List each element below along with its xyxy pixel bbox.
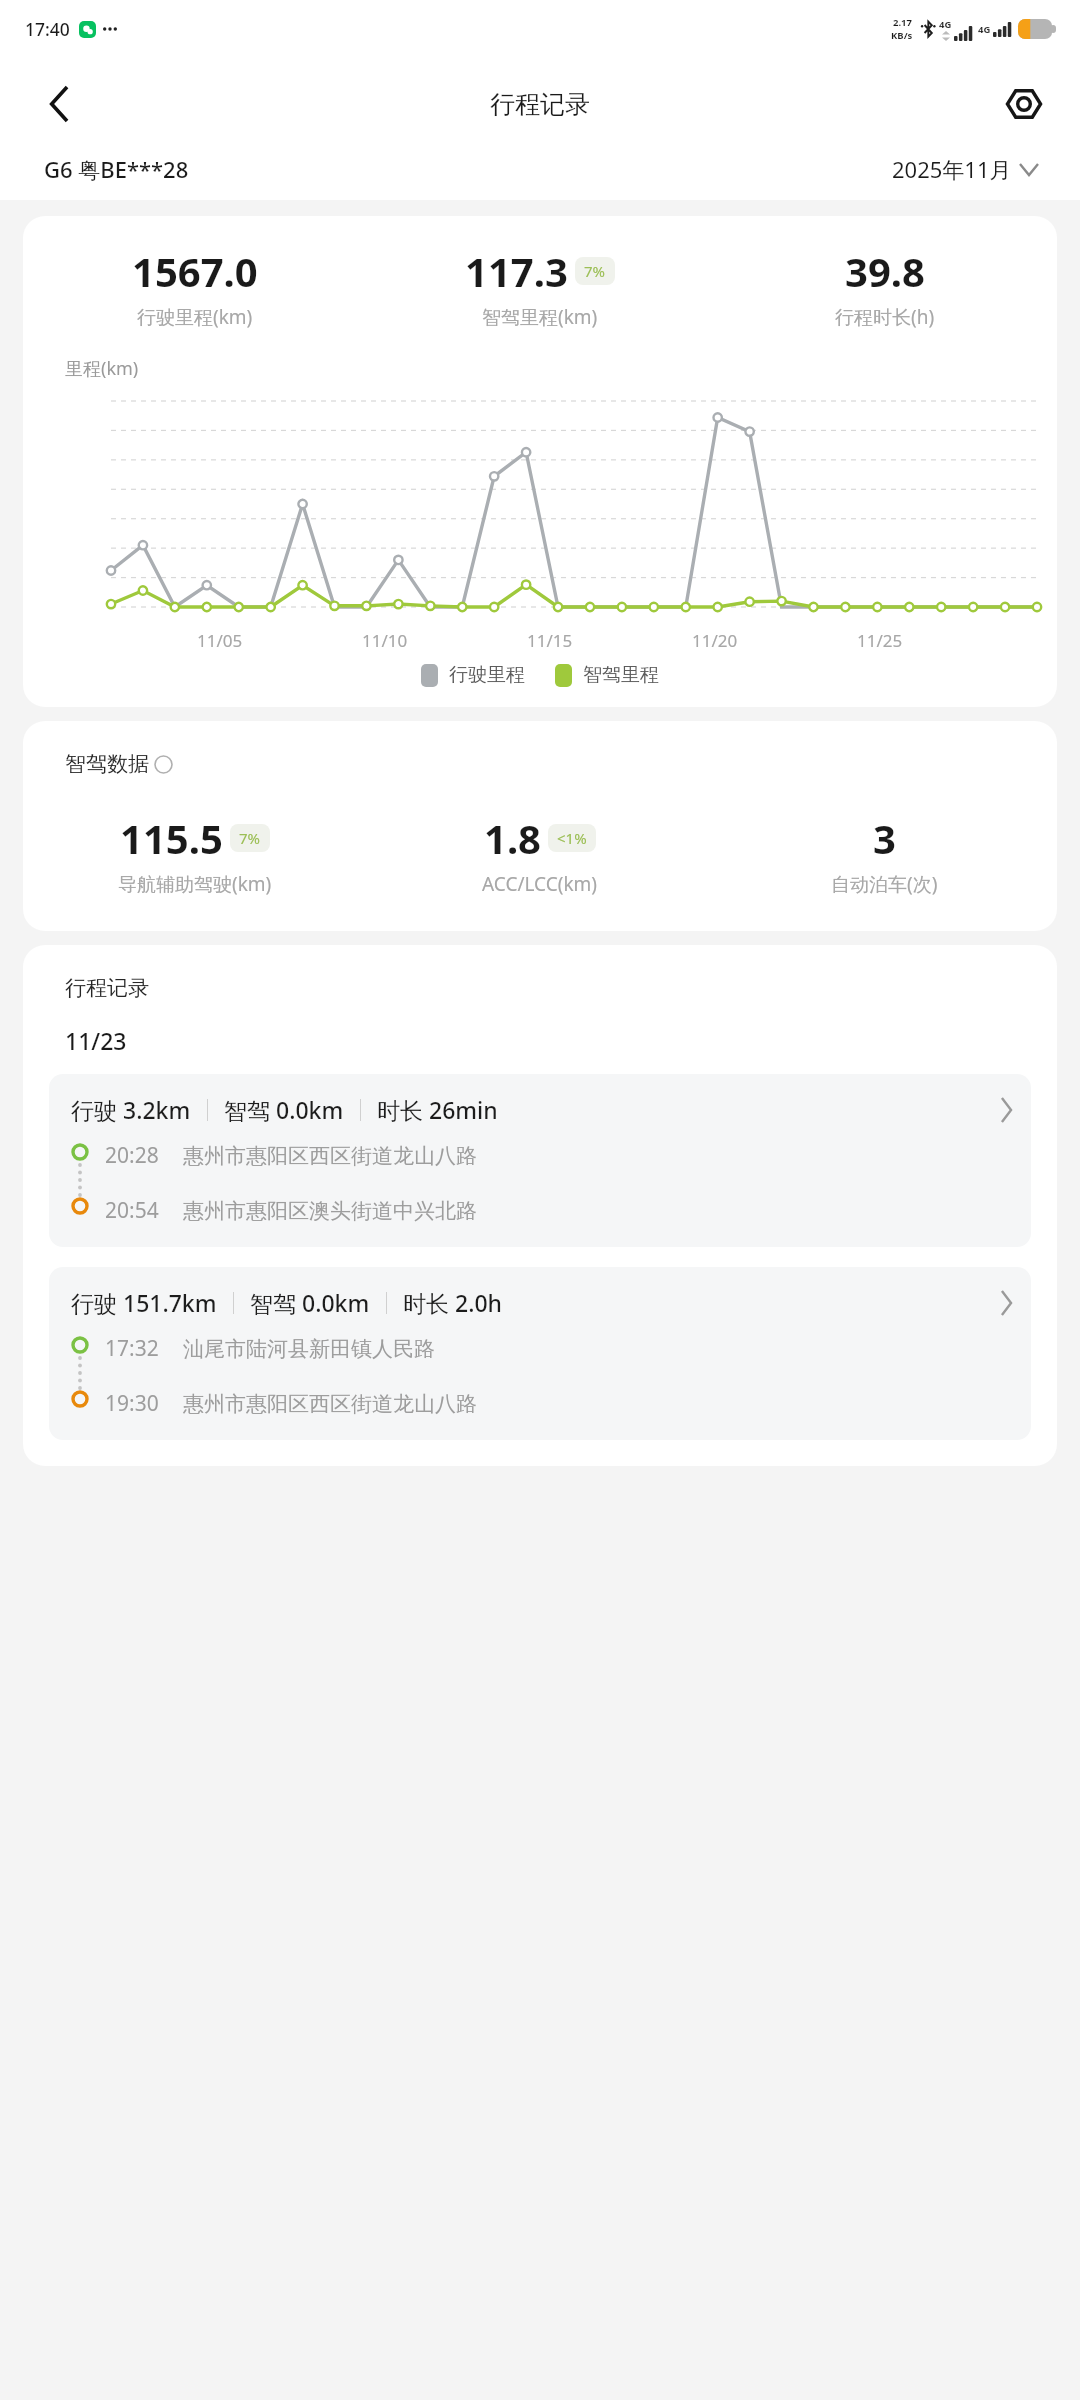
- staticText: 里程(km): [65, 356, 139, 381]
- staticText: 7%: [239, 828, 261, 848]
- staticText: 20:28: [105, 1141, 159, 1170]
- button[interactable]: 行驶 151.7km: [49, 1267, 1031, 1440]
- staticText: 行程时长(h): [835, 304, 935, 330]
- button[interactable]: 行驶 3.2km: [49, 1074, 1031, 1247]
- staticText: 汕尾市陆河县新田镇人民路: [183, 1336, 435, 1362]
- staticText: KB/s: [891, 29, 913, 42]
- staticText: 智驾 0.0km: [224, 1094, 344, 1125]
- staticText: 时长 26min: [377, 1094, 498, 1125]
- staticText: 17:40: [25, 17, 70, 41]
- button[interactable]: Settings: [996, 76, 1052, 132]
- staticText: 行驶里程(km): [137, 304, 253, 330]
- staticText: 115.5: [120, 811, 223, 865]
- staticText: 11/10: [362, 629, 408, 652]
- staticText: 智驾 0.0km: [250, 1287, 370, 1318]
- staticText: 11/20: [692, 629, 738, 652]
- staticText: 时长 2.0h: [403, 1287, 502, 1318]
- staticText: 惠州市惠阳区西区街道龙山八路: [183, 1391, 477, 1417]
- staticText: 39.8: [845, 244, 925, 298]
- staticText: 11/25: [857, 629, 903, 652]
- staticText: 17:32: [105, 1334, 159, 1363]
- staticText: 11/05: [197, 629, 243, 652]
- staticText: 智驾里程(km): [482, 304, 598, 330]
- staticText: 3: [873, 811, 896, 865]
- staticText: 11/15: [527, 629, 573, 652]
- staticText: 1.8: [484, 811, 541, 865]
- button[interactable]: 2025年11月: [892, 154, 1038, 184]
- staticText: ACC/LCC(km): [482, 871, 597, 897]
- staticText: 1567.0: [132, 244, 258, 298]
- staticText: <1%: [557, 828, 587, 848]
- staticText: 19:30: [105, 1389, 159, 1418]
- staticText: 自动泊车(次): [831, 871, 938, 897]
- staticText: 11/23: [65, 1025, 127, 1056]
- staticText: 4G: [939, 18, 952, 31]
- staticText: 行驶 151.7km: [71, 1287, 217, 1318]
- staticText: 20:54: [105, 1196, 159, 1225]
- button[interactable]: 智驾数据: [65, 751, 173, 777]
- staticText: 行驶里程: [449, 663, 525, 687]
- staticText: 行驶 3.2km: [71, 1094, 191, 1125]
- staticText: 行程记录: [490, 89, 590, 120]
- staticText: 2025年11月: [892, 154, 1012, 184]
- staticText: 智驾数据: [65, 751, 149, 777]
- staticText: 导航辅助驾驶(km): [118, 871, 272, 897]
- staticText: 117.3: [465, 244, 568, 298]
- staticText: 2.17: [893, 16, 912, 29]
- staticText: 智驾里程: [583, 663, 659, 687]
- staticText: G6 粤BE***28: [44, 154, 189, 184]
- staticText: 4G: [978, 23, 991, 36]
- button[interactable]: Back: [34, 78, 86, 130]
- staticText: 惠州市惠阳区澳头街道中兴北路: [183, 1198, 477, 1224]
- staticText: 7%: [584, 261, 606, 281]
- staticText: 行程记录: [65, 975, 149, 1001]
- staticText: 惠州市惠阳区西区街道龙山八路: [183, 1143, 477, 1169]
